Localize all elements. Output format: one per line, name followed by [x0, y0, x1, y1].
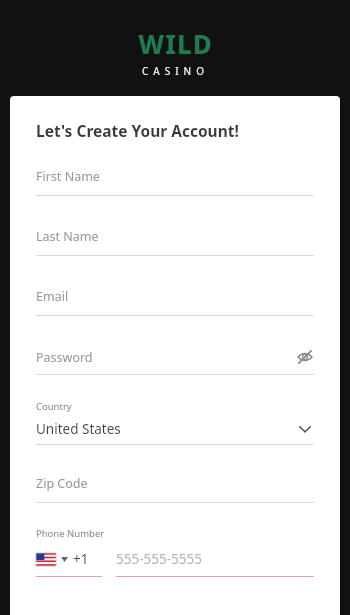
staticText: Phone Number	[36, 527, 105, 540]
other: Select country	[296, 420, 314, 438]
staticText: First Name	[36, 168, 100, 185]
button[interactable]: Email	[36, 288, 314, 316]
staticText: United States	[36, 420, 296, 438]
staticText: Password	[36, 349, 296, 366]
button[interactable]: Country	[36, 400, 314, 445]
staticText: Country	[36, 400, 72, 413]
staticText: +1	[73, 550, 89, 568]
staticText: CASINO	[142, 64, 209, 78]
button[interactable]: First Name	[36, 168, 314, 196]
staticText: Email	[36, 288, 69, 305]
button[interactable]: Zip Code	[36, 475, 314, 503]
button[interactable]: 555-555-5555	[116, 550, 314, 577]
staticText: WILD	[138, 26, 213, 61]
staticText: 555-555-5555	[116, 550, 202, 568]
button[interactable]: Show password	[296, 348, 314, 366]
button[interactable]: Last Name	[36, 228, 314, 256]
button[interactable]: Select country code	[36, 550, 102, 577]
button[interactable]: Password	[36, 348, 314, 375]
staticText: Zip Code	[36, 475, 88, 492]
staticText: Let's Create Your Account!	[36, 120, 239, 141]
staticText: Last Name	[36, 228, 99, 245]
